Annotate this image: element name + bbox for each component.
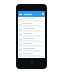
button[interactable] xyxy=(18,32,45,37)
button[interactable] xyxy=(18,27,45,32)
button[interactable]: Menu xyxy=(19,13,22,16)
button[interactable]: Menu xyxy=(18,11,45,17)
button[interactable] xyxy=(18,37,45,42)
button[interactable] xyxy=(18,17,45,22)
button[interactable] xyxy=(18,22,45,27)
button[interactable] xyxy=(18,52,45,57)
button[interactable] xyxy=(18,47,45,52)
button[interactable] xyxy=(18,42,45,47)
button[interactable]: Home xyxy=(30,60,34,64)
